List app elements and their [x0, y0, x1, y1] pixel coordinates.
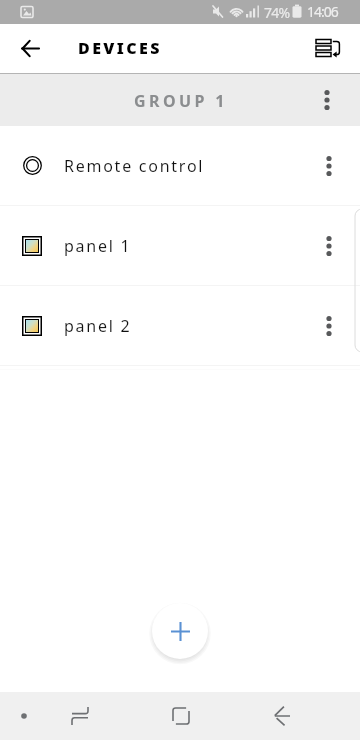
staticText: DEVICES — [78, 37, 162, 59]
button[interactable]: Add device — [152, 603, 208, 659]
staticText: panel 2 — [64, 315, 132, 337]
staticText: 74% — [264, 3, 290, 22]
button[interactable]: Remote control — [0, 126, 360, 205]
button[interactable]: Back — [8, 26, 52, 70]
button[interactable]: Home — [159, 694, 203, 738]
button[interactable]: Recent apps — [58, 694, 102, 738]
button[interactable]: panel 1 — [0, 206, 360, 285]
button[interactable]: Device options — [309, 226, 349, 266]
staticText: panel 1 — [64, 235, 132, 257]
staticText: Remote control — [64, 155, 205, 177]
button[interactable]: Group options — [307, 80, 347, 120]
button[interactable]: Sort order — [306, 26, 350, 70]
button[interactable]: Menu — [6, 698, 42, 734]
staticText: GROUP 1 — [134, 90, 228, 112]
button[interactable]: Back — [260, 694, 304, 738]
button[interactable]: Device options — [309, 146, 349, 186]
button[interactable]: panel 2 — [0, 286, 360, 365]
button[interactable]: Device options — [309, 306, 349, 346]
staticText: 14:06 — [307, 2, 338, 21]
